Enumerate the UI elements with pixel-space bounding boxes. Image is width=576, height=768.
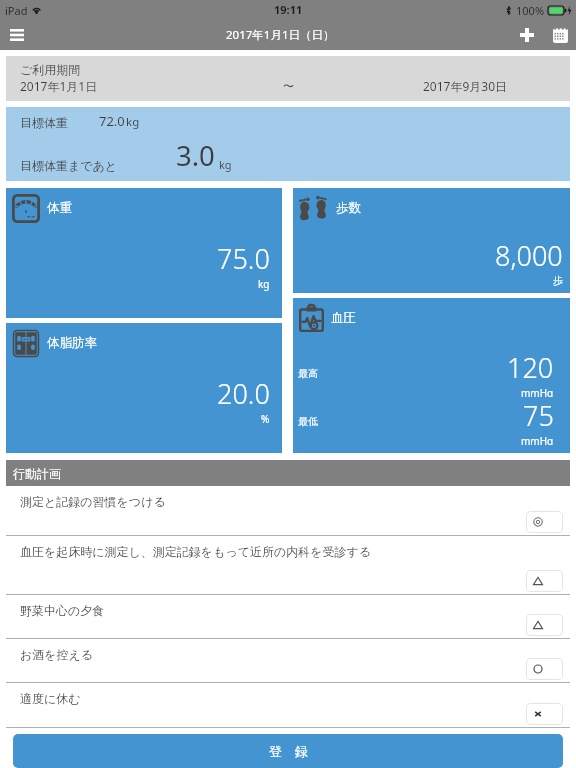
staticText: 最低 [298, 415, 318, 428]
button[interactable]: 登 録 [13, 734, 563, 768]
staticText: 体重 [47, 200, 72, 216]
staticText: 20.0 [217, 375, 270, 412]
staticText: kg [219, 157, 232, 172]
staticText: 72.0 [99, 112, 125, 130]
button[interactable]: 測定と記録の習慣をつける [0, 486, 576, 536]
button[interactable]: Calendar [545, 20, 575, 50]
staticText: 最高 [298, 367, 318, 380]
button[interactable]: お酒を控える [0, 639, 576, 683]
button[interactable]: 歩数 [293, 188, 570, 293]
staticText: 75.0 [217, 240, 270, 277]
staticText: 目標体重 [20, 115, 68, 130]
staticText: 2017年9月30日 [423, 78, 508, 94]
staticText: 測定と記録の習慣をつける [20, 494, 166, 509]
button[interactable]: Status [526, 703, 563, 725]
button[interactable]: 体脂肪率 [6, 323, 282, 453]
staticText: mmHg [521, 434, 554, 445]
staticText: 2017年1月1日 [20, 78, 98, 94]
staticText: 2017年1月1日（日） [226, 27, 335, 43]
staticText: % [261, 412, 270, 426]
staticText: 行動計画 [13, 466, 61, 481]
button[interactable]: 野菜中心の夕食 [0, 595, 576, 639]
button[interactable]: 血圧を起床時に測定し、測定記録をもって近所の内科を受診する [0, 536, 576, 595]
button[interactable]: 適度に休む [0, 683, 576, 728]
staticText: 目標体重まであと [20, 158, 118, 173]
staticText: 適度に休む [20, 691, 81, 706]
button[interactable]: 体重 [6, 188, 282, 318]
staticText: お酒を控える [20, 647, 94, 662]
staticText: 歩数 [336, 200, 361, 216]
staticText: 8,000 [495, 237, 563, 274]
staticText: kg [258, 277, 270, 291]
staticText: kg [126, 114, 140, 130]
staticText: iPad [5, 3, 28, 18]
staticText: 歩 [553, 274, 563, 287]
staticText: 野菜中心の夕食 [20, 603, 105, 618]
staticText: 19:11 [274, 2, 303, 17]
button[interactable]: Status [526, 658, 563, 680]
staticText: 体脂肪率 [47, 335, 97, 351]
staticText: 血圧を起床時に測定し、測定記録をもって近所の内科を受診する [20, 544, 372, 559]
staticText: 120 [507, 349, 554, 386]
staticText: 登 録 [269, 742, 308, 760]
staticText: 3.0 [176, 137, 215, 174]
staticText: ご利用期間 [20, 62, 81, 77]
staticText: mmHg [521, 386, 554, 397]
button[interactable]: Status [526, 614, 563, 636]
staticText: 100% [516, 3, 545, 18]
button[interactable]: Status [526, 511, 563, 533]
staticText: 75 [523, 397, 554, 434]
button[interactable]: 血圧 [293, 298, 570, 453]
button[interactable]: Status [526, 570, 563, 592]
staticText: 血圧 [331, 310, 356, 326]
staticText: 〜 [283, 79, 294, 93]
button[interactable]: Menu [1, 20, 33, 50]
button[interactable]: Add [512, 20, 542, 50]
